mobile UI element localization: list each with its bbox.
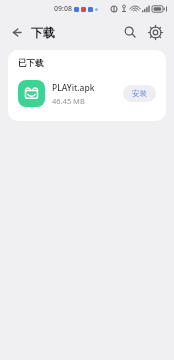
button[interactable]: Settings bbox=[144, 21, 166, 43]
staticText: 09:08 bbox=[54, 4, 72, 14]
button[interactable]: Search bbox=[119, 21, 141, 43]
button[interactable]: PLAYit.apk bbox=[8, 75, 166, 112]
button[interactable]: 安装 bbox=[123, 85, 156, 102]
staticText: PLAYit.apk bbox=[52, 82, 95, 94]
staticText: 安装 bbox=[132, 89, 147, 98]
staticText: 46.45 MB bbox=[52, 96, 85, 106]
staticText: 下载 bbox=[31, 25, 55, 40]
button[interactable]: Back bbox=[6, 22, 26, 42]
staticText: 已下载 bbox=[18, 58, 44, 69]
